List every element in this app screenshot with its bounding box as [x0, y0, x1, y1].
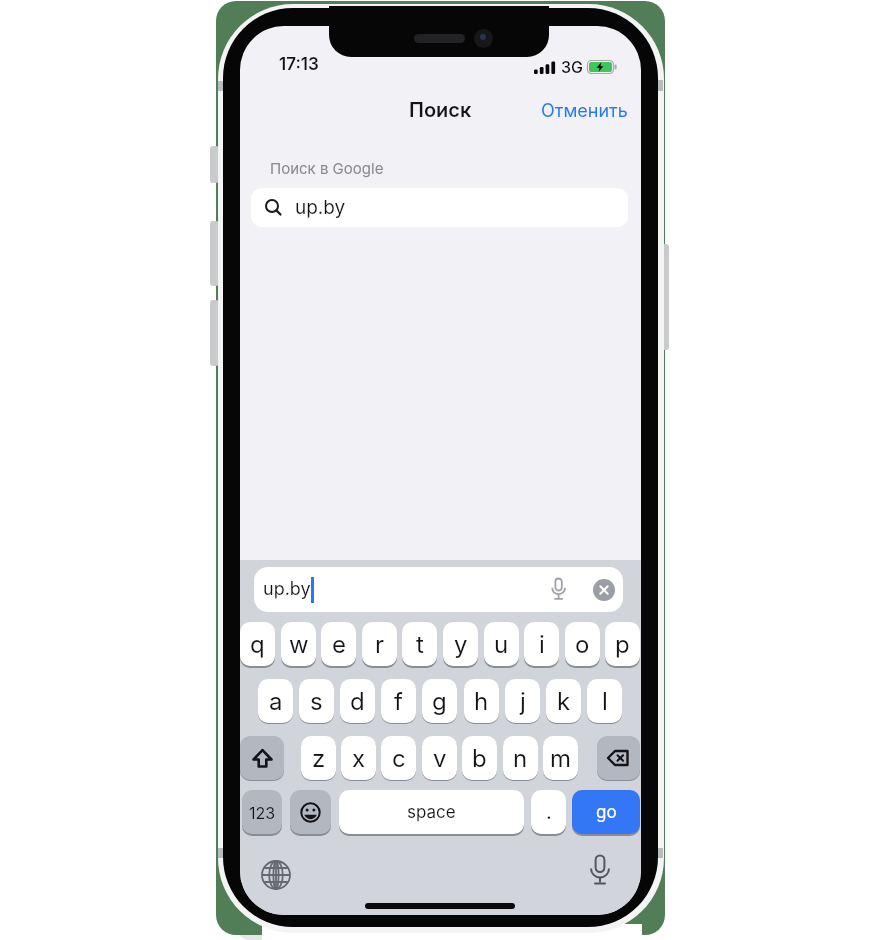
staticText: t: [416, 630, 424, 659]
button[interactable]: [597, 736, 640, 780]
staticText: up.by: [295, 196, 346, 219]
staticText: s: [310, 687, 323, 716]
staticText: b: [472, 744, 487, 773]
staticText: m: [550, 744, 572, 773]
button[interactable]: up.by: [251, 188, 628, 227]
button[interactable]: c: [381, 736, 416, 780]
button[interactable]: v: [422, 736, 457, 780]
staticText: f: [394, 687, 403, 716]
staticText: Отменить: [541, 100, 628, 122]
staticText: a: [269, 687, 283, 716]
staticText: Поиск: [409, 98, 472, 122]
staticText: w: [289, 630, 309, 659]
button[interactable]: g: [422, 679, 457, 723]
staticText: k: [557, 687, 571, 716]
staticText: h: [474, 687, 489, 716]
button[interactable]: n: [503, 736, 538, 780]
button[interactable]: l: [587, 679, 622, 723]
button[interactable]: o: [565, 622, 600, 666]
button[interactable]: b: [462, 736, 497, 780]
staticText: j: [520, 687, 526, 716]
staticText: up.by: [263, 578, 311, 600]
button[interactable]: h: [464, 679, 499, 723]
button[interactable]: .: [531, 790, 566, 834]
button[interactable]: y: [443, 622, 478, 666]
staticText: o: [575, 630, 590, 659]
staticText: 17:13: [279, 54, 319, 75]
button[interactable]: d: [340, 679, 375, 723]
staticText: u: [494, 630, 509, 659]
button[interactable]: [290, 790, 331, 834]
button[interactable]: x: [341, 736, 376, 780]
button[interactable]: m: [543, 736, 578, 780]
button[interactable]: u: [484, 622, 519, 666]
staticText: .: [546, 800, 552, 824]
button[interactable]: p: [605, 622, 640, 666]
staticText: g: [432, 687, 447, 716]
staticText: Поиск в Google: [270, 159, 384, 177]
staticText: l: [602, 687, 608, 716]
button[interactable]: r: [362, 622, 397, 666]
staticText: x: [352, 744, 366, 773]
staticText: space: [407, 802, 456, 823]
staticText: 3G: [561, 57, 583, 76]
button[interactable]: go: [572, 790, 640, 834]
button[interactable]: k: [546, 679, 581, 723]
staticText: z: [312, 744, 326, 773]
button[interactable]: t: [402, 622, 437, 666]
button[interactable]: i: [524, 622, 559, 666]
staticText: c: [392, 744, 406, 773]
button[interactable]: f: [381, 679, 416, 723]
staticText: y: [454, 630, 468, 659]
staticText: d: [350, 687, 365, 716]
staticText: v: [433, 744, 447, 773]
button[interactable]: q: [240, 622, 275, 666]
button[interactable]: s: [299, 679, 334, 723]
staticText: n: [513, 744, 528, 773]
staticText: go: [596, 802, 617, 823]
button[interactable]: up.by: [254, 567, 623, 612]
button[interactable]: z: [301, 736, 336, 780]
button[interactable]: w: [281, 622, 316, 666]
staticText: q: [250, 630, 265, 659]
button[interactable]: j: [505, 679, 540, 723]
button[interactable]: a: [258, 679, 293, 723]
button[interactable]: e: [321, 622, 356, 666]
button[interactable]: 123: [242, 790, 282, 834]
button[interactable]: [240, 736, 284, 780]
staticText: e: [332, 630, 346, 659]
staticText: i: [539, 630, 545, 659]
staticText: p: [615, 630, 630, 659]
button[interactable]: space: [339, 790, 524, 834]
staticText: 123: [249, 803, 276, 822]
staticText: r: [375, 630, 385, 659]
button[interactable]: Отменить: [541, 100, 628, 122]
